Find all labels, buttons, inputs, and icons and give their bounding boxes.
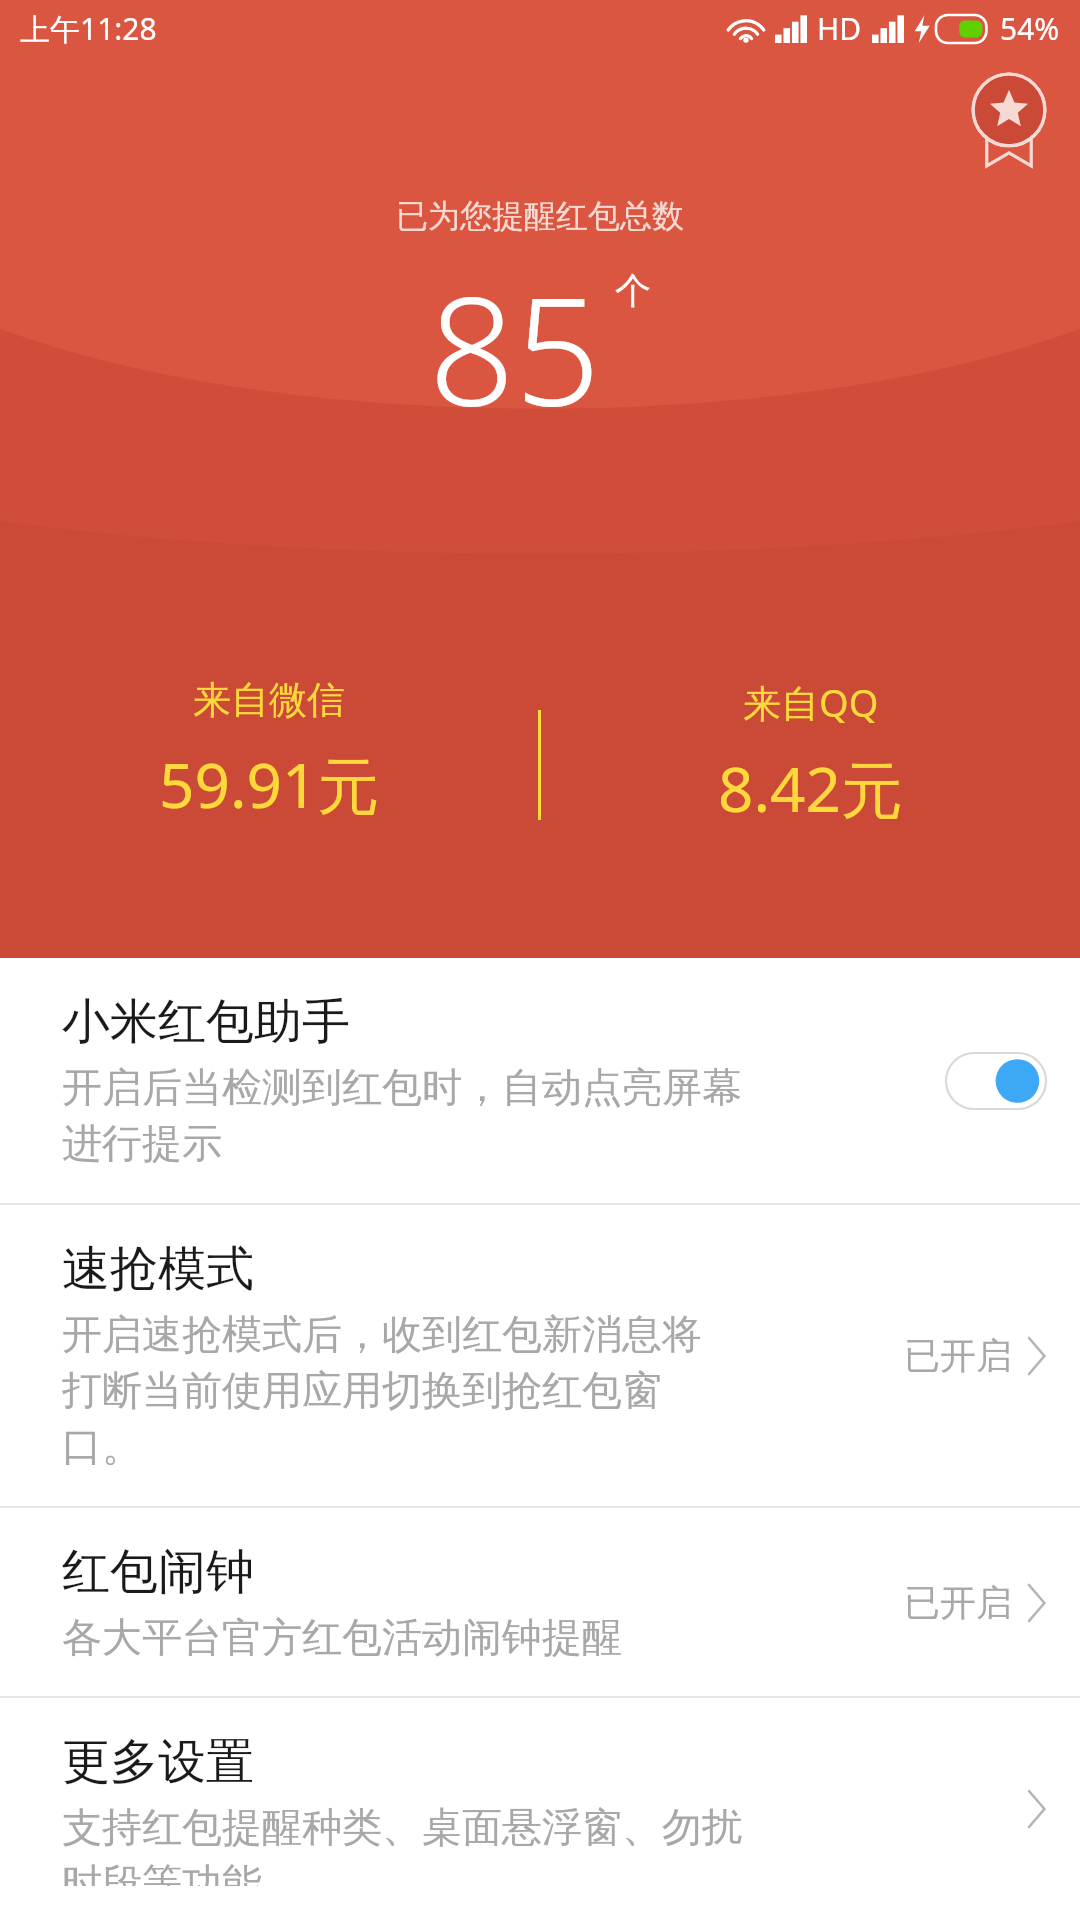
button[interactable]: Open settings [1026,1791,1046,1827]
staticText: 8.42元 [718,746,904,831]
staticText: 更多设置 [62,1732,254,1792]
staticText: 开启后当检测到红包时，自动点亮屏幕 进行提示 [62,1062,742,1169]
staticText: 59.91元 [159,742,380,827]
staticText: 来自QQ [743,676,879,728]
staticText: HD [817,8,862,49]
staticText: 各大平台官方红包活动闹钟提醒 [62,1612,622,1662]
button[interactable]: 小米红包助手 [0,958,1080,1203]
staticText: 来自微信 [193,676,345,724]
button[interactable]: Achievements badge [970,72,1048,168]
staticText: 个 [615,268,651,313]
button[interactable]: 已开启 [904,1580,1046,1625]
staticText: 54% [1000,8,1060,49]
staticText: 已为您提醒红包总数 [396,196,684,236]
staticText: 速抢模式 [62,1239,254,1299]
button[interactable]: 红包闹钟 [0,1508,1080,1696]
button[interactable]: 已开启 [904,1333,1046,1378]
button[interactable]: 更多设置 [0,1698,1080,1920]
staticText: 小米红包助手 [62,992,350,1052]
staticText: 开启速抢模式后，收到红包新消息将 打断当前使用应用切换到抢红包窗 口。 [62,1309,702,1472]
staticText: 上午11:28 [20,8,157,49]
staticText: 已开启 [904,1580,1012,1625]
staticText: 支持红包提醒种类、桌面悬浮窗、勿扰 时段等功能 [62,1802,742,1886]
button[interactable]: 速抢模式 [0,1205,1080,1506]
button[interactable]: Toggle 小米红包助手 [946,1053,1046,1109]
staticText: 已开启 [904,1333,1012,1378]
staticText: 85 [429,246,601,450]
staticText: 红包闹钟 [62,1542,254,1602]
